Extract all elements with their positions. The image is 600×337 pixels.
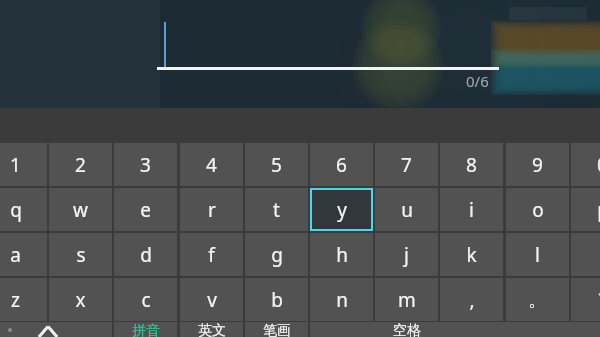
staticText: 1 [10, 152, 21, 178]
staticText: 7 [401, 152, 412, 178]
staticText: 0/6 [466, 71, 489, 91]
button[interactable]: 拼音 [114, 322, 177, 337]
staticText: e [140, 197, 151, 223]
staticText: u [401, 197, 413, 223]
staticText: k [466, 242, 477, 268]
staticText: q [10, 197, 22, 223]
button[interactable]: d [114, 233, 177, 276]
button[interactable]: z [0, 278, 47, 321]
button[interactable]: 5 [245, 143, 308, 186]
staticText: x [75, 287, 86, 313]
button[interactable]: p [571, 188, 600, 231]
staticText: h [336, 242, 348, 268]
button[interactable]: m [375, 278, 438, 321]
staticText: z [11, 287, 20, 313]
button[interactable]: 6 [310, 143, 373, 186]
button[interactable]: g [245, 233, 308, 276]
staticText: , [469, 287, 475, 313]
button[interactable]: i [440, 188, 503, 231]
button[interactable]: h [310, 233, 373, 276]
button[interactable]: 笔画 [245, 322, 308, 337]
staticText: 。 [528, 288, 547, 312]
staticText: v [207, 287, 217, 313]
staticText: m [398, 287, 416, 313]
staticText: y [337, 197, 347, 223]
staticText: 0 [597, 152, 600, 178]
button[interactable]: o [506, 188, 569, 231]
button[interactable]: n [310, 278, 373, 321]
staticText: o [532, 197, 544, 223]
staticText: j [404, 242, 409, 268]
staticText: 8 [466, 152, 477, 178]
button[interactable]: j [375, 233, 438, 276]
button[interactable]: l [506, 233, 569, 276]
button[interactable]: , [440, 278, 503, 321]
button[interactable]: 。 [506, 278, 569, 321]
button[interactable]: 4 [180, 143, 243, 186]
staticText: p [597, 197, 600, 223]
staticText: 3 [140, 152, 151, 178]
button[interactable]: 7 [375, 143, 438, 186]
button[interactable]: 空格 [310, 322, 600, 337]
staticText: g [271, 242, 283, 268]
staticText: 5 [271, 152, 282, 178]
button[interactable]: ? [571, 278, 600, 321]
staticText: 拼音 [132, 322, 160, 337]
staticText: l [535, 242, 540, 268]
button[interactable]: s [49, 233, 112, 276]
button[interactable]: a [0, 233, 47, 276]
button[interactable]: 2 [49, 143, 112, 186]
staticText: f [208, 242, 215, 268]
button[interactable]: 1 [0, 143, 47, 186]
staticText: 空格 [393, 322, 421, 337]
button[interactable]: f [180, 233, 243, 276]
staticText: s [76, 242, 86, 268]
button[interactable]: y [310, 188, 373, 231]
staticText: 4 [206, 152, 217, 178]
staticText: b [271, 287, 283, 313]
button[interactable]: c [114, 278, 177, 321]
button[interactable]: u [375, 188, 438, 231]
button[interactable]: x [49, 278, 112, 321]
staticText: 6 [336, 152, 347, 178]
button[interactable]: w [49, 188, 112, 231]
button[interactable]: Shift [0, 322, 112, 337]
button[interactable]: t [245, 188, 308, 231]
staticText: d [140, 242, 152, 268]
button[interactable]: r [180, 188, 243, 231]
staticText: t [273, 197, 280, 223]
button[interactable]: 8 [440, 143, 503, 186]
button[interactable]: 英文 [180, 322, 243, 337]
staticText: i [469, 197, 474, 223]
button[interactable]: 3 [114, 143, 177, 186]
button[interactable]: v [180, 278, 243, 321]
button[interactable]: e [114, 188, 177, 231]
staticText: c [141, 287, 151, 313]
button[interactable]: 9 [506, 143, 569, 186]
button[interactable]: 0 [571, 143, 600, 186]
staticText: n [336, 287, 348, 313]
staticText: 2 [75, 152, 86, 178]
staticText: 9 [532, 152, 543, 178]
staticText: a [10, 242, 21, 268]
staticText: 英文 [198, 322, 226, 337]
staticText: r [208, 197, 216, 223]
button[interactable]: q [0, 188, 47, 231]
staticText: 笔画 [263, 322, 291, 337]
staticText: ? [598, 287, 600, 313]
staticText: w [73, 197, 88, 223]
button[interactable]: b [245, 278, 308, 321]
button[interactable]: k [440, 233, 503, 276]
